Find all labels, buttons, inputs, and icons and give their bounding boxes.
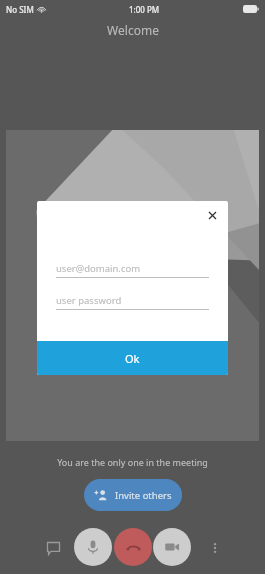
button[interactable]: Stop video	[153, 528, 191, 566]
staticText: Ok	[125, 351, 140, 366]
button[interactable]: End call	[114, 528, 152, 566]
staticText: 1:00 PM	[129, 4, 160, 15]
button[interactable]: Invite others	[84, 479, 182, 511]
button[interactable]: Close	[204, 207, 220, 223]
button[interactable]: More options	[203, 536, 227, 560]
button[interactable]: Ok	[37, 341, 228, 375]
button[interactable]: Chat	[41, 536, 65, 560]
staticText: Welcome	[107, 22, 159, 38]
staticText: user@domain.com	[56, 262, 141, 275]
staticText: You are the only one in the meeting	[57, 456, 208, 468]
staticText: Invite others	[115, 489, 172, 502]
button[interactable]: Mute microphone	[74, 528, 112, 566]
staticText: user password	[56, 294, 122, 307]
staticText: No SIM	[6, 4, 34, 15]
button[interactable]: user password	[56, 291, 209, 309]
button[interactable]: user@domain.com	[56, 259, 209, 277]
